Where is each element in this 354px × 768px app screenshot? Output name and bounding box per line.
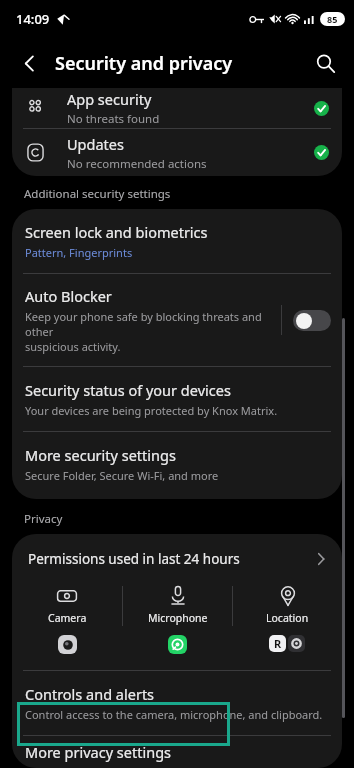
staticText: suspicious activity. [25,339,121,354]
button[interactable]: Search [308,46,342,80]
staticText: Control access to the camera, microphone… [25,707,323,722]
button[interactable]: Updates [12,129,342,176]
button[interactable]: Screen lock and biometrics [12,209,342,273]
button[interactable]: Auto Blocker toggle [293,310,331,331]
button[interactable]: Camera [12,586,122,625]
button[interactable]: Location [233,586,342,625]
button[interactable]: Microphone [123,586,232,625]
button[interactable]: More security settings [12,432,342,499]
staticText: More security settings [25,445,176,465]
staticText: Security status of your devices [25,380,231,400]
staticText: Your devices are being protected by Knox… [25,403,278,418]
staticText: No recommended actions [67,156,207,172]
staticText: Controls and alerts [25,684,155,704]
staticText: Microphone [148,611,208,625]
staticText: Camera [48,611,87,625]
button[interactable]: Controls and alerts [12,671,342,735]
staticText: Screen lock and biometrics [25,222,208,242]
staticText: Keep your phone safe by blocking threats… [25,309,272,339]
staticText: 85 [327,13,338,25]
button[interactable]: Auto Blocker [12,274,342,366]
staticText: Security and privacy [55,51,233,76]
staticText: Privacy [24,511,63,527]
button[interactable]: Permissions used in last 24 hours [12,534,342,581]
staticText: 14:09 [16,10,50,28]
button[interactable]: Back [12,46,46,80]
staticText: Location [266,611,309,625]
staticText: R [274,636,282,651]
button[interactable]: Security status of your devices [12,367,342,431]
staticText: Secure Folder, Secure Wi-Fi, and more [25,468,219,483]
staticText: Updates [67,134,124,154]
staticText: Pattern, Fingerprints [25,245,133,260]
staticText: Auto Blocker [25,286,112,306]
staticText: App security [67,89,152,109]
staticText: No threats found [67,111,160,127]
staticText: Permissions used in last 24 hours [28,550,240,568]
button[interactable]: More privacy settings [12,736,342,768]
button[interactable]: App security [12,88,342,128]
staticText: More privacy settings [25,742,171,762]
staticText: Additional security settings [24,186,171,202]
